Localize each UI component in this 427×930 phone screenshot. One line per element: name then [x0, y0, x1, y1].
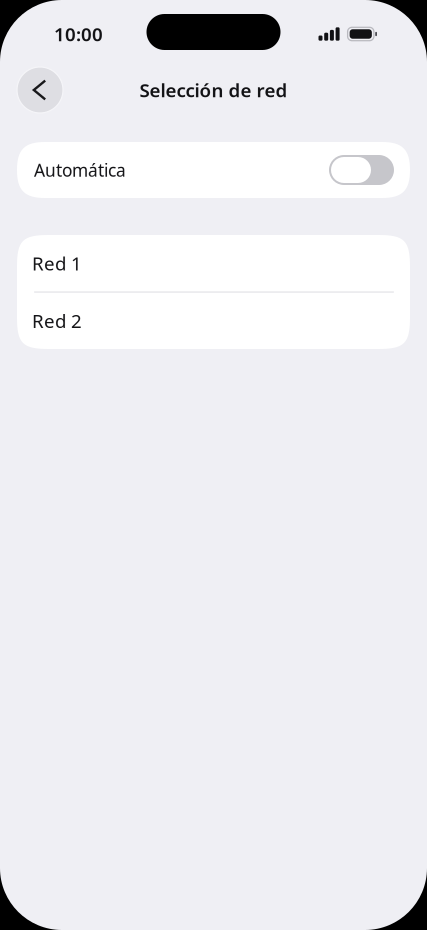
- button[interactable]: Red 1: [17, 235, 410, 291]
- staticText: Red 1: [32, 251, 82, 276]
- staticText: Automática: [34, 158, 126, 181]
- button[interactable]: Atrás: [17, 67, 63, 113]
- staticText: Red 2: [32, 308, 82, 333]
- staticText: Selección de red: [139, 78, 287, 102]
- staticText: 10:00: [54, 22, 103, 46]
- button[interactable]: Automática: [17, 142, 410, 198]
- button[interactable]: Red 2: [17, 292, 410, 349]
